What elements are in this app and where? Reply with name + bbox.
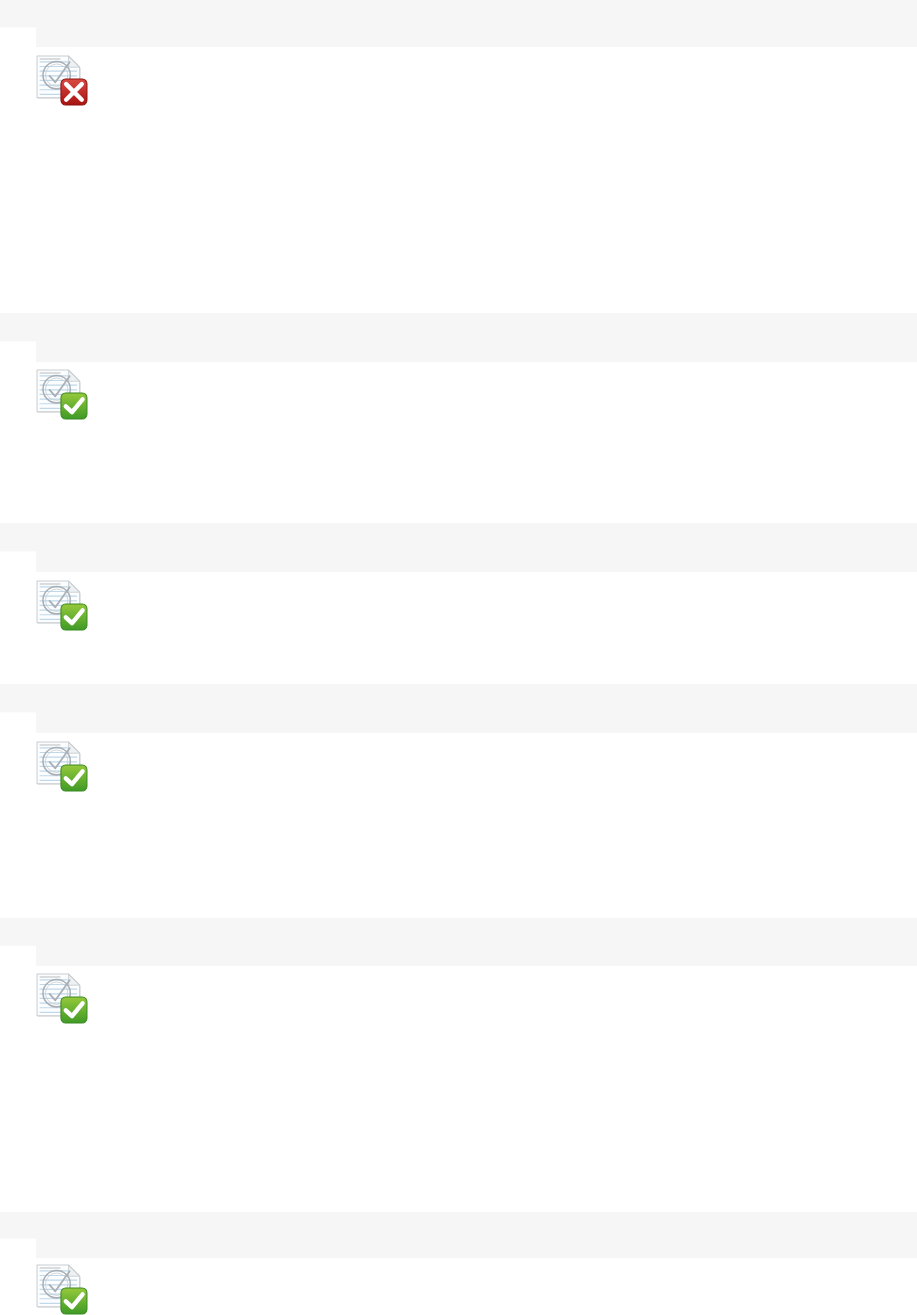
button[interactable]: Survey completed <box>36 972 88 1024</box>
button[interactable]: Survey completed <box>36 1263 88 1315</box>
button[interactable]: Survey completed <box>36 740 88 792</box>
button[interactable]: Survey completed <box>36 368 88 420</box>
button[interactable]: Survey not completed <box>36 54 88 106</box>
button[interactable]: Survey completed <box>36 579 88 631</box>
